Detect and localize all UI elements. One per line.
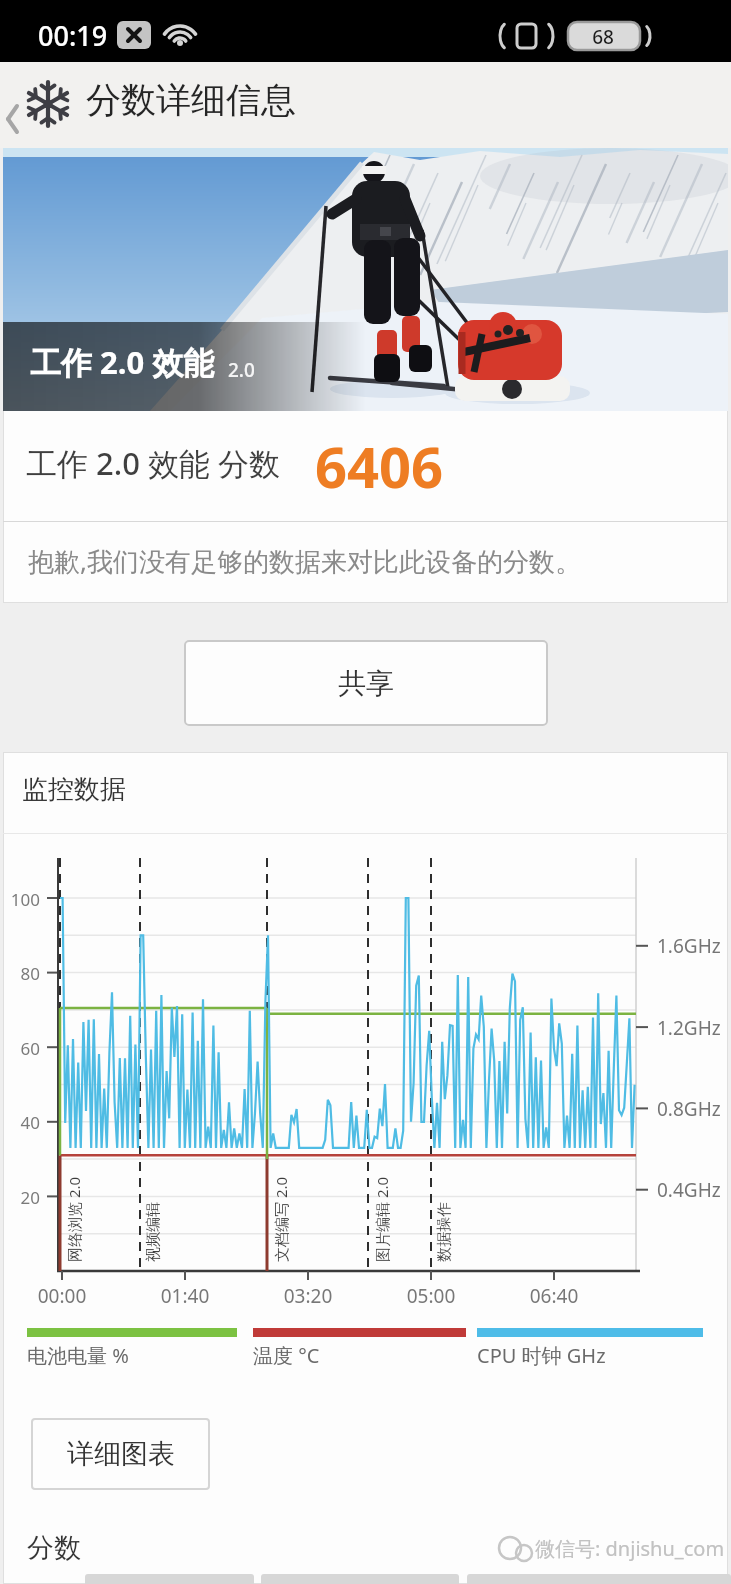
staticText: 1.2GHz xyxy=(657,1015,721,1041)
staticText: 温度 °C xyxy=(253,1342,320,1369)
staticText: 100 xyxy=(0,888,40,911)
staticText: CPU 时钟 GHz xyxy=(477,1342,606,1369)
staticText: 分数 xyxy=(27,1531,81,1565)
staticText: 20 xyxy=(0,1186,40,1209)
staticText: 视频编辑 xyxy=(144,1202,163,1262)
staticText: 6406 xyxy=(315,428,444,504)
staticText: 微信号: dnjishu_com xyxy=(535,1535,725,1562)
staticText: 工作 2.0 效能 分数 xyxy=(26,442,281,484)
button[interactable]: 共享 xyxy=(184,640,548,726)
staticText: 图片编辑 2.0 xyxy=(372,1176,392,1262)
staticText: 80 xyxy=(0,962,40,985)
staticText: 电池电量 % xyxy=(27,1342,129,1369)
staticText: 共享 xyxy=(338,666,394,701)
staticText: 详细图表 xyxy=(67,1437,175,1471)
staticText: 0.4GHz xyxy=(657,1177,721,1203)
staticText: 60 xyxy=(0,1037,40,1060)
staticText: 工作 2.0 效能 xyxy=(30,341,215,383)
staticText: 监控数据 xyxy=(22,773,126,806)
staticText: 2.0 xyxy=(228,357,255,383)
staticText: 0.8GHz xyxy=(657,1096,721,1122)
staticText: 40 xyxy=(0,1111,40,1134)
staticText: 文档编写 2.0 xyxy=(271,1176,291,1262)
staticText: 抱歉,我们没有足够的数据来对比此设备的分数。 xyxy=(28,543,581,579)
staticText: 数据操作 xyxy=(435,1202,454,1262)
staticText: 分数详细信息 xyxy=(86,78,296,122)
staticText: 00:00 xyxy=(22,1283,102,1309)
staticText: 68 xyxy=(585,24,621,50)
button[interactable] xyxy=(0,62,90,148)
staticText: 01:40 xyxy=(145,1283,225,1309)
button[interactable]: 详细图表 xyxy=(31,1418,210,1490)
staticText: 00:19 xyxy=(38,17,108,54)
staticText: 06:40 xyxy=(514,1283,594,1309)
staticText: 03:20 xyxy=(268,1283,348,1309)
staticText: 05:00 xyxy=(391,1283,471,1309)
staticText: 1.6GHz xyxy=(657,933,721,959)
staticText: 网络浏览 2.0 xyxy=(64,1176,84,1262)
